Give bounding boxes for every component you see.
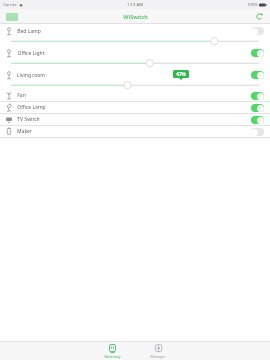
staticText: 100%	[247, 2, 258, 8]
button[interactable]: TV Switch	[0, 114, 270, 126]
staticText: Office Lamp	[17, 104, 46, 111]
staticText: Manager	[150, 354, 166, 359]
staticText: Carrier	[3, 2, 17, 8]
button[interactable]: Living room	[0, 68, 270, 90]
staticText: Maker	[17, 128, 32, 135]
staticText: TV Switch	[17, 116, 40, 123]
staticText: Bed Lamp	[17, 28, 41, 35]
button[interactable]: Manager	[143, 342, 173, 360]
button[interactable]: Off	[251, 27, 264, 35]
staticText: Office Light	[17, 50, 45, 57]
staticText: WiSwitch	[123, 13, 148, 21]
button[interactable]: On	[251, 104, 264, 112]
staticText: Electricity	[104, 354, 121, 359]
button[interactable]: On	[251, 92, 264, 100]
staticText: 1:13 AM	[127, 2, 143, 8]
button[interactable]: On	[251, 71, 264, 79]
button[interactable]: Fan	[0, 90, 270, 102]
staticText: Fan	[17, 92, 26, 99]
button[interactable]: Refresh	[255, 12, 264, 21]
staticText: 47%	[176, 71, 186, 77]
button[interactable]: Menu	[6, 13, 18, 21]
button[interactable]: Bed Lamp	[0, 24, 270, 46]
button[interactable]: Off	[251, 128, 264, 136]
button[interactable]: Electricity	[97, 342, 127, 360]
button[interactable]: Maker	[0, 126, 270, 138]
button[interactable]: Office Lamp	[0, 102, 270, 114]
button[interactable]: On	[251, 49, 264, 57]
button[interactable]: Office Light	[0, 46, 270, 68]
staticText: Living room	[17, 72, 45, 79]
button[interactable]: On	[251, 116, 264, 124]
